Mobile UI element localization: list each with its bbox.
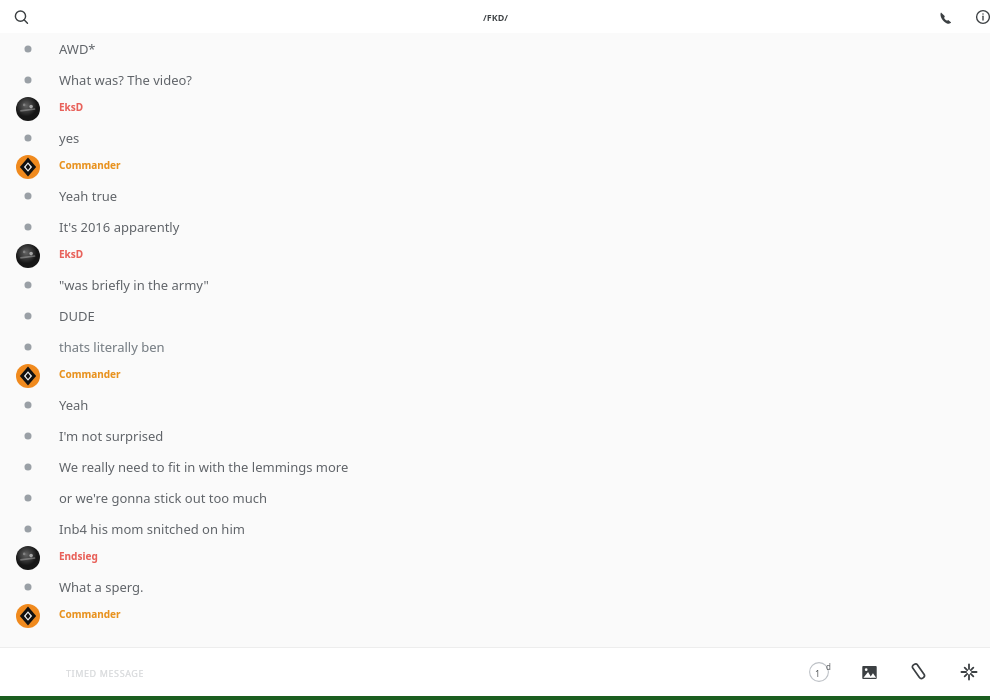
staticText: We really need to fit in with the lemmin… — [59, 458, 349, 476]
staticText: Endsieg — [59, 549, 98, 563]
button[interactable]: What was? The video? — [0, 64, 990, 95]
button[interactable]: Yeah — [0, 389, 990, 420]
staticText: It's 2016 apparently — [59, 218, 180, 236]
staticText: DUDE — [59, 307, 95, 325]
button[interactable]: Commander — [0, 602, 990, 629]
button[interactable]: Send photo — [852, 655, 886, 689]
staticText: d — [826, 661, 831, 672]
staticText: Commander — [59, 367, 121, 381]
button[interactable]: Commander — [0, 362, 990, 389]
staticText: EksD — [59, 247, 84, 261]
button[interactable]: I'm not surprised — [0, 420, 990, 451]
button[interactable]: Attach file — [902, 655, 936, 689]
button[interactable]: thats literally ben — [0, 331, 990, 362]
staticText: Inb4 his mom snitched on him — [59, 520, 245, 538]
button[interactable]: It's 2016 apparently — [0, 211, 990, 242]
button[interactable]: "was briefly in the army" — [0, 269, 990, 300]
staticText: EksD — [59, 100, 84, 114]
staticText: "was briefly in the army" — [59, 276, 209, 294]
button[interactable]: AWD* — [0, 33, 990, 64]
staticText: or we're gonna stick out too much — [59, 489, 268, 507]
staticText: /FKD/ — [483, 11, 508, 23]
staticText: TIMED MESSAGE — [66, 667, 145, 679]
staticText: Commander — [59, 158, 121, 172]
button[interactable]: DUDE — [0, 300, 990, 331]
button[interactable]: Search — [6, 2, 36, 32]
button[interactable]: Message timer one day — [802, 655, 836, 689]
button[interactable]: Commander — [0, 153, 990, 180]
staticText: 1 — [815, 667, 821, 679]
button[interactable]: Group info — [968, 2, 990, 32]
button[interactable]: EksD — [0, 95, 990, 122]
button[interactable]: Effects — [952, 655, 986, 689]
button[interactable]: yes — [0, 122, 990, 153]
button[interactable]: Call — [930, 2, 960, 32]
staticText: What a sperg. — [59, 578, 144, 596]
staticText: yes — [59, 129, 80, 147]
staticText: What was? The video? — [59, 71, 193, 89]
button[interactable]: Inb4 his mom snitched on him — [0, 513, 990, 544]
button[interactable]: or we're gonna stick out too much — [0, 482, 990, 513]
button[interactable]: What a sperg. — [0, 571, 990, 602]
staticText: Commander — [59, 607, 121, 621]
staticText: AWD* — [59, 40, 96, 58]
staticText: Yeah true — [59, 187, 118, 205]
staticText: Yeah — [59, 396, 89, 414]
button[interactable]: EksD — [0, 242, 990, 269]
button[interactable]: Endsieg — [0, 544, 990, 571]
button[interactable]: Yeah true — [0, 180, 990, 211]
button[interactable]: We really need to fit in with the lemmin… — [0, 451, 990, 482]
staticText: thats literally ben — [59, 338, 165, 356]
staticText: I'm not surprised — [59, 427, 164, 445]
